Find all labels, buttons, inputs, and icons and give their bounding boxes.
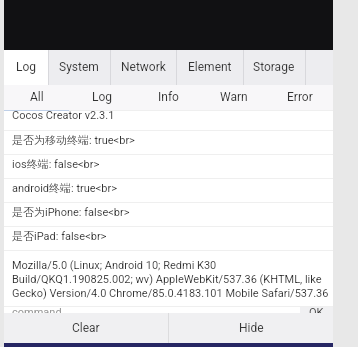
staticText: Network xyxy=(121,60,166,74)
button[interactable]: Hide xyxy=(169,313,333,343)
staticText: Storage xyxy=(253,60,295,74)
staticText: command xyxy=(12,307,62,313)
staticText: Cocos Creator v2.3.1 xyxy=(12,111,115,122)
button[interactable]: 是否iPad: false<br> xyxy=(4,227,333,251)
staticText: Gecko) Version/4.0 Chrome/85.0.4183.101 … xyxy=(12,287,329,300)
button[interactable]: Info xyxy=(135,85,201,110)
staticText: 是否iPad: false<br> xyxy=(12,229,107,243)
staticText: Error xyxy=(287,90,313,104)
button[interactable]: 是否为iPhone: false<br> xyxy=(4,203,333,227)
button[interactable]: OK xyxy=(300,307,333,313)
staticText: Log xyxy=(92,90,113,104)
button[interactable]: All xyxy=(4,85,69,110)
staticText: 是否为iPhone: false<br> xyxy=(12,205,130,219)
button[interactable]: Log xyxy=(69,85,135,110)
button[interactable]: System xyxy=(48,50,110,85)
button[interactable]: Error xyxy=(267,85,333,110)
staticText: Build/QKQ1.190825.002; wv) AppleWebKit/5… xyxy=(12,273,322,286)
staticText: OK xyxy=(309,307,324,313)
staticText: System xyxy=(59,60,99,74)
button[interactable]: Storage xyxy=(243,50,305,85)
button[interactable]: android终端: true<br> xyxy=(4,179,333,203)
staticText: ios终端: false<br> xyxy=(12,157,100,171)
button[interactable]: Cocos Creator v2.3.1 xyxy=(4,111,333,131)
staticText: 是否为移动终端: true<br> xyxy=(12,133,135,147)
staticText: android终端: true<br> xyxy=(12,181,117,195)
button[interactable]: command xyxy=(4,307,300,313)
button[interactable]: Log xyxy=(4,50,48,85)
staticText: Mozilla/5.0 (Linux; Android 10; Redmi K3… xyxy=(12,259,217,272)
staticText: Element xyxy=(188,60,232,74)
staticText: All xyxy=(30,90,44,104)
staticText: Hide xyxy=(239,321,264,335)
staticText: Log xyxy=(16,60,37,74)
button[interactable]: ios终端: false<br> xyxy=(4,155,333,179)
button[interactable]: Warn xyxy=(201,85,267,110)
button[interactable] xyxy=(305,50,333,85)
staticText: Warn xyxy=(220,90,248,104)
button[interactable]: Network xyxy=(110,50,176,85)
button[interactable]: Clear xyxy=(4,313,168,343)
button[interactable]: Mozilla/5.0 (Linux; Android 10; Redmi K3… xyxy=(4,251,333,307)
staticText: Info xyxy=(158,90,179,104)
button[interactable]: 是否为移动终端: true<br> xyxy=(4,131,333,155)
button[interactable]: Element xyxy=(176,50,243,85)
staticText: Clear xyxy=(72,321,100,335)
